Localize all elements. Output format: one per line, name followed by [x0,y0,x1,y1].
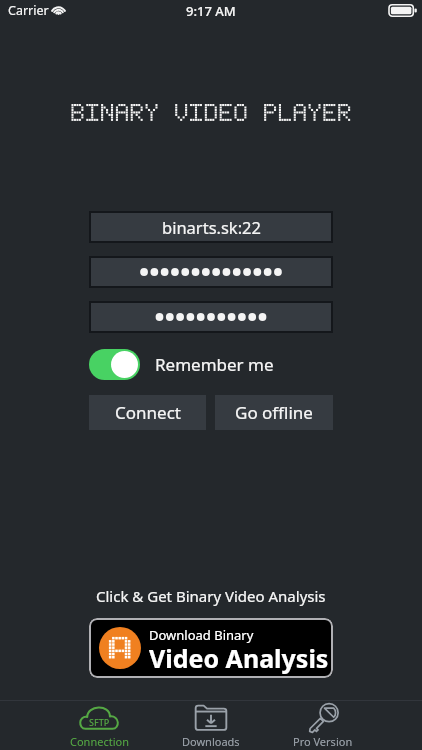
button[interactable]: Downloads [155,701,267,750]
button[interactable]: Pro Version [267,701,379,750]
staticText: Connection [70,734,129,749]
button[interactable]: Go offline [215,395,333,430]
staticText: 9:17 AM [186,2,236,20]
staticText: Remember me [155,353,274,376]
button[interactable]: binarts.sk:22 [91,213,331,241]
button[interactable]: Password field [91,303,331,331]
button[interactable]: Download Binary Video Analysis [89,618,333,678]
button[interactable]: Password field [91,258,331,286]
button[interactable]: Connection [43,701,155,750]
button[interactable]: Remember me toggle [89,349,140,380]
staticText: binarts.sk:22 [162,216,261,238]
staticText: SFTP [89,716,110,728]
staticText: Connect [115,401,181,424]
staticText: Go offline [235,401,313,424]
staticText: Downloads [182,734,240,749]
button[interactable]: Connect [89,395,206,430]
staticText: Click & Get Binary Video Analysis [96,586,326,606]
staticText: Carrier [8,2,49,19]
staticText: Video Analysis [149,641,329,675]
staticText: Download Binary [149,626,254,644]
staticText: Pro Version [293,734,353,749]
